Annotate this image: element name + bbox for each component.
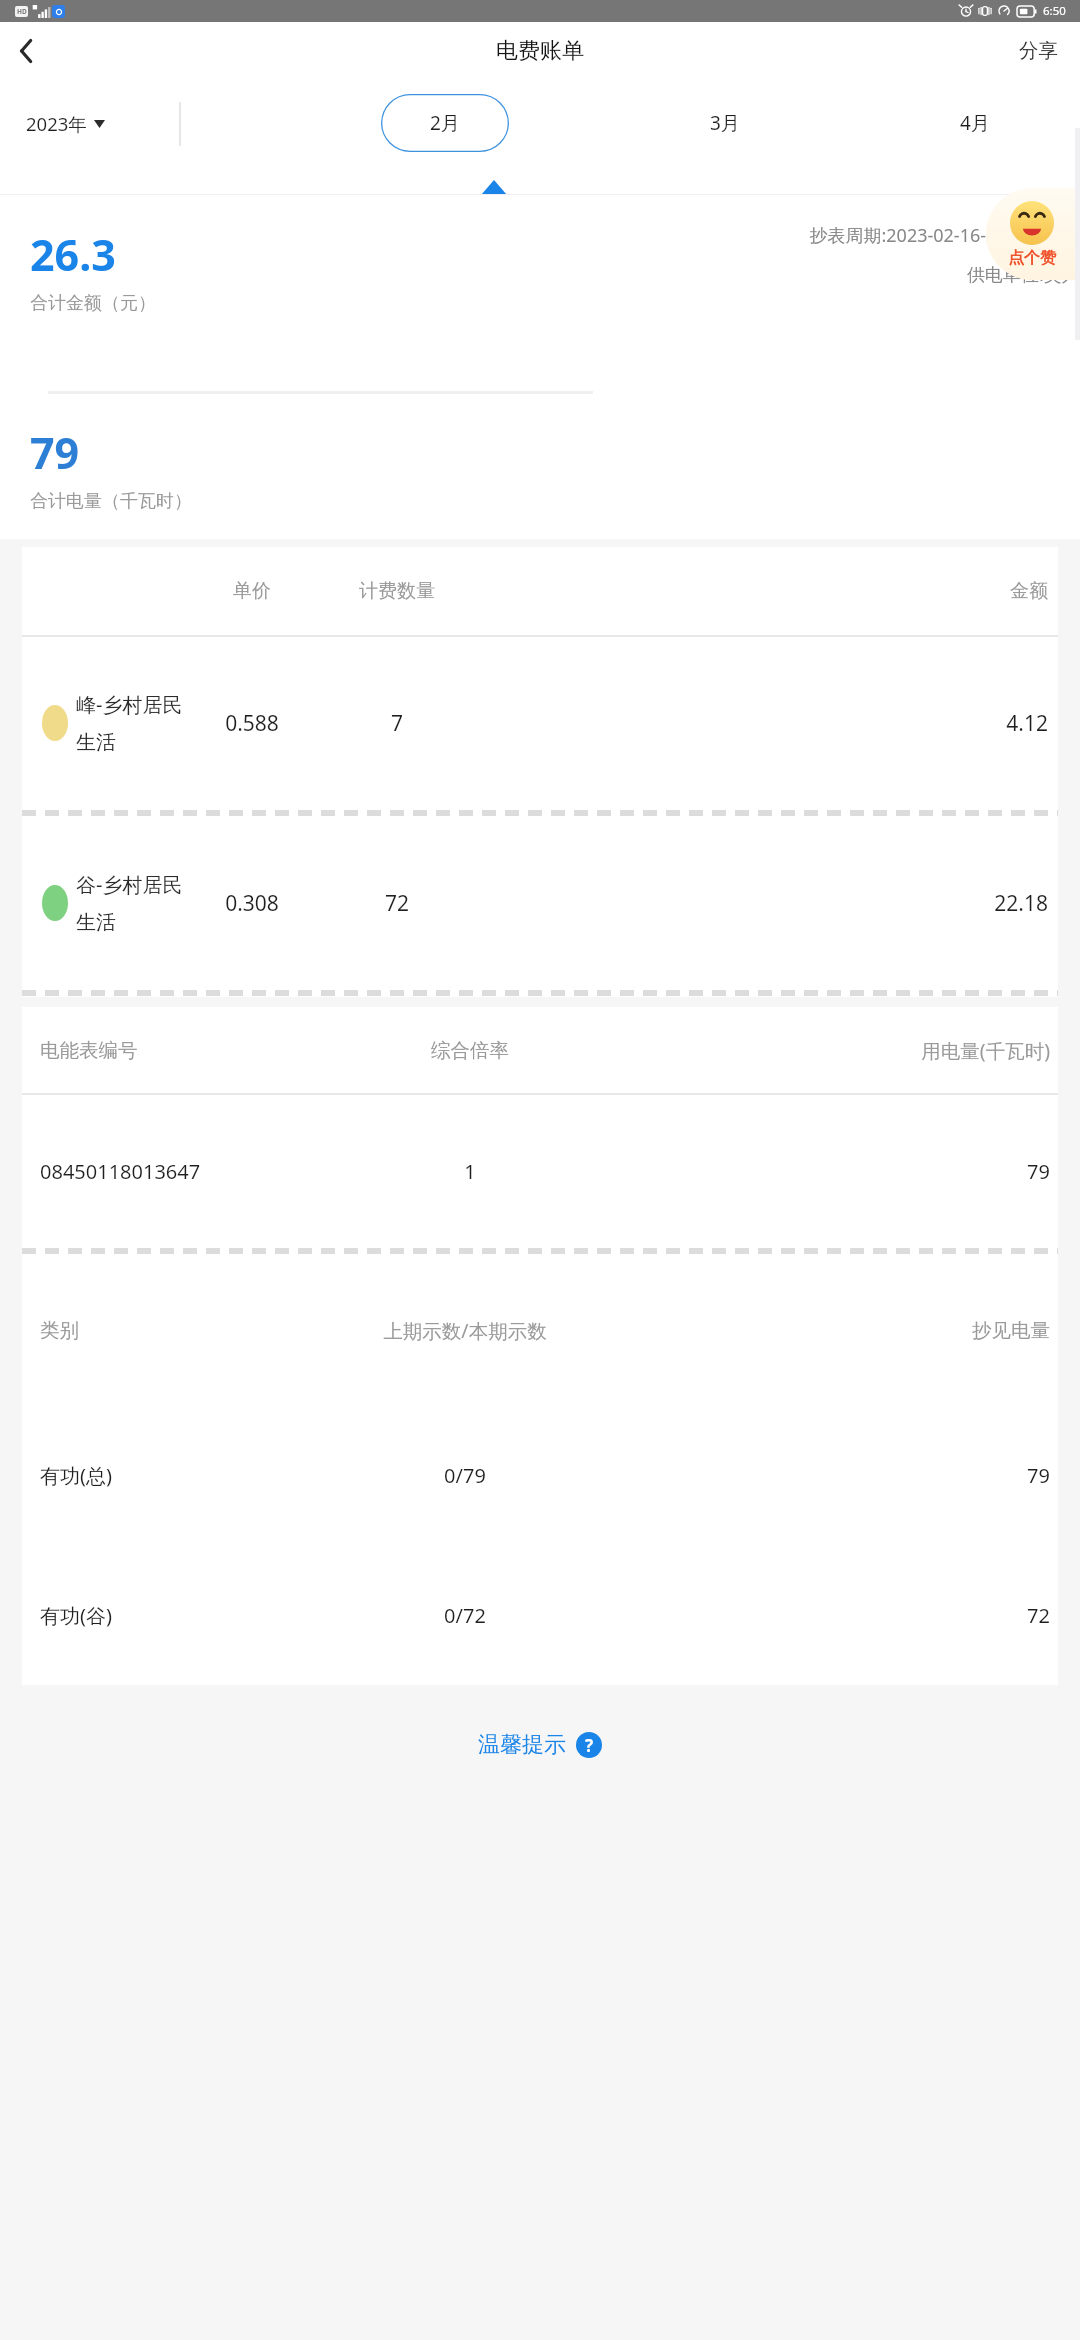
staticText: 分享 xyxy=(1019,38,1058,63)
staticText: 合计金额（元） xyxy=(30,292,156,315)
staticText: 0.308 xyxy=(192,889,312,918)
button[interactable]: 有功(总) xyxy=(40,1405,1050,1545)
staticText: 79 xyxy=(30,423,80,482)
staticText: 类别 xyxy=(40,1318,320,1343)
staticText: 72 xyxy=(312,889,482,918)
staticText: 26.3 xyxy=(30,225,116,284)
staticText: 电能表编号 xyxy=(40,1038,340,1063)
staticText: 有功(总) xyxy=(40,1462,320,1489)
staticText: 0/79 xyxy=(320,1462,610,1489)
button[interactable]: 2023年 xyxy=(26,111,105,136)
staticText: 生活 xyxy=(76,730,116,755)
staticText: 4月 xyxy=(960,110,990,136)
staticText: 生活 xyxy=(76,910,116,935)
staticText: 72 xyxy=(610,1602,1050,1629)
staticText: 电费账单 xyxy=(496,37,584,65)
staticText: 综合倍率 xyxy=(340,1038,600,1063)
staticText: 金额 xyxy=(482,579,1048,603)
button[interactable]: 点个赞 xyxy=(986,188,1078,280)
staticText: 峰-乡村居民 xyxy=(76,691,183,718)
button[interactable]: 温馨提示 xyxy=(478,1731,602,1759)
staticText: 2月 xyxy=(430,110,460,136)
staticText: 22.18 xyxy=(482,889,1048,918)
button[interactable]: 有功(谷) xyxy=(40,1545,1050,1685)
staticText: 抄表周期:2023-02-16-2023-03-01 xyxy=(809,223,1080,248)
staticText: 抄见电量 xyxy=(610,1318,1050,1343)
staticText: 点个赞 xyxy=(1008,248,1056,268)
staticText: 1 xyxy=(340,1158,600,1185)
staticText: 2023年 xyxy=(26,111,87,136)
staticText: 合计电量（千瓦时） xyxy=(30,490,192,513)
staticText: 温馨提示 xyxy=(478,1731,566,1759)
staticText: 7 xyxy=(312,709,482,738)
staticText: 4.12 xyxy=(482,709,1048,738)
staticText: 谷-乡村居民 xyxy=(76,871,183,898)
staticText: 79 xyxy=(610,1462,1050,1489)
staticText: ? xyxy=(585,1734,594,1757)
staticText: 用电量(千瓦时) xyxy=(600,1037,1050,1064)
staticText: 08450118013647 xyxy=(40,1158,270,1185)
button[interactable]: 谷-乡村居民 xyxy=(22,817,1048,989)
staticText: 计费数量 xyxy=(312,579,482,603)
staticText: 0.588 xyxy=(192,709,312,738)
staticText: 上期示数/本期示数 xyxy=(320,1317,610,1344)
staticText: 有功(谷) xyxy=(40,1602,320,1629)
staticText: 6:50 xyxy=(1043,3,1066,19)
button[interactable]: 3月 xyxy=(710,110,740,136)
button[interactable]: 分享 xyxy=(997,22,1080,79)
staticText: 供电单位:吴兴 xyxy=(967,262,1080,287)
staticText: 3月 xyxy=(710,110,740,136)
button[interactable]: 峰-乡村居民 xyxy=(22,637,1048,809)
button[interactable]: 2月 xyxy=(381,94,509,152)
staticText: 单价 xyxy=(192,579,312,603)
button[interactable]: Back xyxy=(0,25,52,77)
staticText: 79 xyxy=(600,1158,1050,1185)
staticText: HD xyxy=(17,7,27,16)
staticText: 0/72 xyxy=(320,1602,610,1629)
button[interactable]: 4月 xyxy=(960,110,990,136)
